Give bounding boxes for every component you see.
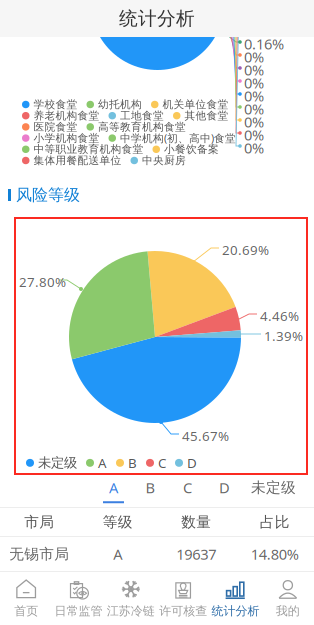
button[interactable]: B [132, 474, 169, 507]
staticText: 机关单位食堂 [162, 98, 228, 111]
staticText: 中学机构(初、高中)食堂 [120, 131, 236, 145]
staticText: 我的 [276, 604, 300, 618]
staticText: 集体用餐配送单位 [33, 154, 121, 167]
staticText: 0% [244, 60, 264, 79]
staticText: 无锡市局 [9, 545, 69, 563]
staticText: 江苏冷链 [107, 604, 155, 618]
staticText: 工地食堂 [120, 109, 164, 122]
staticText: 学校食堂 [33, 98, 77, 111]
button[interactable]: 未定级 [243, 474, 304, 507]
staticText: C [158, 454, 166, 472]
staticText: 27.80% [19, 273, 66, 291]
staticText: 0% [244, 125, 264, 144]
staticText: A [113, 544, 122, 564]
button[interactable]: 江苏冷链 [105, 572, 157, 625]
staticText: 统计分析 [211, 604, 259, 618]
button[interactable]: A [95, 474, 132, 507]
staticText: 等级 [103, 513, 133, 531]
staticText: 高等教育机构食堂 [98, 120, 186, 133]
staticText: 20.69% [222, 241, 269, 259]
staticText: D [219, 478, 230, 497]
button[interactable]: 日常监管 [52, 572, 105, 625]
staticText: A [98, 454, 107, 472]
staticText: 医院食堂 [33, 120, 77, 133]
staticText: 统计分析 [119, 7, 195, 30]
staticText: 小餐饮备案 [164, 143, 219, 156]
staticText: 0% [244, 47, 264, 66]
staticText: D [187, 454, 197, 472]
button[interactable]: C [169, 474, 206, 507]
button[interactable]: 我的 [262, 572, 314, 625]
staticText: 中央厨房 [142, 154, 186, 167]
staticText: 养老机构食堂 [33, 109, 99, 122]
staticText: 0.16% [244, 34, 284, 53]
staticText: 中等职业教育机构食堂 [33, 143, 143, 156]
staticText: 首页 [14, 604, 38, 618]
staticText: 数量 [181, 513, 211, 531]
staticText: 0% [244, 73, 264, 92]
staticText: 未定级 [38, 455, 77, 471]
button[interactable]: 统计分析 [209, 572, 262, 625]
staticText: 4.46% [260, 307, 299, 325]
staticText: 0% [244, 86, 264, 105]
staticText: 风险等级 [16, 185, 80, 205]
button[interactable]: D [206, 474, 243, 507]
staticText: 45.67% [182, 427, 229, 445]
button[interactable]: 许可核查 [157, 572, 209, 625]
staticText: 0% [244, 138, 264, 157]
staticText: 占比 [260, 513, 290, 531]
button[interactable]: 首页 [0, 572, 52, 625]
staticText: 14.80% [251, 544, 299, 564]
staticText: 1.39% [264, 327, 303, 345]
staticText: 其他食堂 [184, 109, 228, 122]
staticText: B [145, 478, 155, 497]
staticText: 0% [244, 112, 264, 131]
staticText: 许可核查 [159, 604, 207, 618]
staticText: A [109, 478, 118, 497]
staticText: 幼托机构 [98, 98, 142, 111]
staticText: 小学机构食堂 [33, 131, 99, 145]
staticText: 未定级 [251, 478, 296, 496]
staticText: 日常监管 [54, 604, 102, 618]
staticText: 0% [244, 99, 264, 118]
staticText: 19637 [176, 544, 216, 564]
staticText: B [128, 454, 137, 472]
staticText: C [183, 478, 192, 497]
staticText: 市局 [24, 513, 54, 531]
